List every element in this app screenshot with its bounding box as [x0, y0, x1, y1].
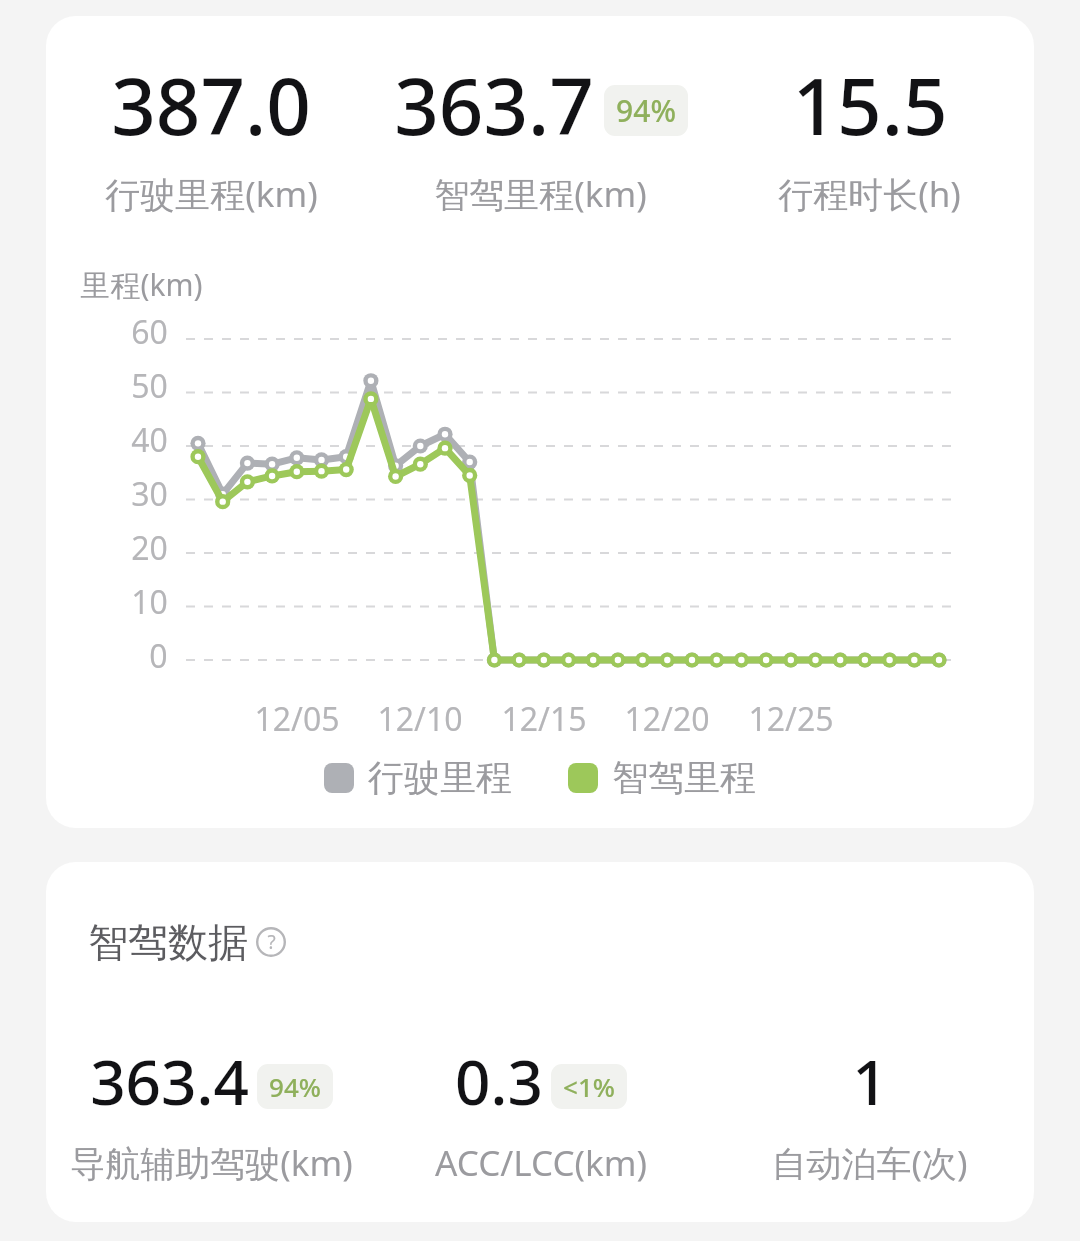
staticText: ACC/LCC(km) — [435, 1139, 647, 1187]
staticText: 行驶里程 — [368, 755, 512, 800]
button[interactable]: 363.7 — [376, 52, 705, 218]
staticText: 15.5 — [792, 52, 948, 158]
staticText: 30 — [131, 472, 168, 516]
staticText: 0 — [149, 634, 168, 678]
staticText: 60 — [131, 310, 168, 354]
staticText: 10 — [131, 580, 168, 624]
staticText: 363.4 — [90, 1039, 249, 1123]
staticText: 行程时长(h) — [778, 170, 961, 218]
staticText: 50 — [131, 364, 168, 408]
button[interactable]: 1 — [705, 1039, 1034, 1187]
button[interactable]: 智驾数据 — [88, 917, 286, 967]
staticText: 智驾数据 — [88, 917, 248, 967]
staticText: 94% — [269, 1069, 321, 1104]
staticText: 自动泊车(次) — [771, 1139, 968, 1187]
button[interactable]: 智驾里程 — [568, 755, 756, 800]
staticText: 12/15 — [501, 697, 587, 741]
staticText: 387.0 — [111, 52, 311, 158]
staticText: 12/20 — [624, 697, 710, 741]
other: 智驾数据说明 — [256, 927, 286, 957]
staticText: 363.7 — [394, 52, 594, 158]
staticText: 1 — [852, 1039, 888, 1123]
staticText: 行驶里程(km) — [105, 170, 318, 218]
staticText: 20 — [131, 526, 168, 570]
staticText: <1% — [563, 1069, 615, 1104]
button[interactable]: 387.0 — [46, 52, 376, 218]
staticText: 94% — [616, 90, 676, 131]
button[interactable]: 0.3 — [376, 1039, 705, 1187]
staticText: 导航辅助驾驶(km) — [70, 1139, 353, 1187]
button[interactable]: 363.4 — [46, 1039, 376, 1187]
staticText: 12/10 — [377, 697, 463, 741]
staticText: ? — [267, 929, 276, 955]
staticText: 40 — [131, 418, 168, 462]
staticText: 12/05 — [254, 697, 340, 741]
button[interactable]: 15.5 — [705, 52, 1034, 218]
staticText: 智驾里程(km) — [434, 170, 647, 218]
staticText: 智驾里程 — [612, 755, 756, 800]
staticText: 12/25 — [748, 697, 834, 741]
staticText: 里程(km) — [80, 264, 203, 305]
button[interactable]: 行驶里程 — [324, 755, 512, 800]
staticText: 0.3 — [455, 1039, 543, 1123]
